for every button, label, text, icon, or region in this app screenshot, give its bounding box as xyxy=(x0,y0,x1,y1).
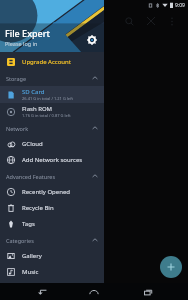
staticText: Advanced Features xyxy=(6,173,56,180)
staticText: Storage xyxy=(6,75,27,82)
button[interactable]: Search xyxy=(118,10,140,32)
button[interactable]: File Expert xyxy=(0,0,104,52)
staticText: GCloud xyxy=(22,140,43,148)
staticText: File Expert xyxy=(5,27,51,39)
button[interactable]: Home xyxy=(81,283,107,300)
staticText: Network xyxy=(6,125,29,132)
button[interactable]: Flash ROM xyxy=(0,103,104,120)
staticText: Upgrade Account xyxy=(22,58,71,66)
button[interactable]: Recents xyxy=(135,283,161,300)
staticText: 1.76 G in total / 0.87 G left xyxy=(22,113,71,118)
staticText: SD Card xyxy=(22,88,45,96)
staticText: 26.41 G in total / 1.21 G left xyxy=(22,96,73,101)
button[interactable]: SD Card xyxy=(0,86,104,103)
button[interactable]: Tags xyxy=(0,216,104,232)
button[interactable]: Recycle Bin xyxy=(0,200,104,216)
button[interactable]: Close xyxy=(140,10,162,32)
button[interactable]: Add xyxy=(160,256,182,278)
button[interactable]: Gallery xyxy=(0,248,104,264)
button[interactable]: Upgrade Account xyxy=(0,54,104,70)
button[interactable]: Add Network sources xyxy=(0,152,104,168)
staticText: Music xyxy=(22,268,39,276)
staticText: Tags xyxy=(22,220,35,228)
button[interactable]: Recently Opened xyxy=(0,184,104,200)
staticText: 9:09 xyxy=(175,2,185,9)
staticText: Categories xyxy=(6,237,34,244)
staticText: Recycle Bin xyxy=(22,204,54,212)
staticText: Recently Opened xyxy=(22,188,70,196)
staticText: Add Network sources xyxy=(22,156,83,164)
button[interactable]: Music xyxy=(0,264,104,280)
button[interactable]: GCloud xyxy=(0,136,104,152)
staticText: Flash ROM xyxy=(22,105,53,113)
button[interactable]: Settings xyxy=(85,33,99,47)
staticText: Gallery xyxy=(22,252,42,260)
button[interactable]: Back xyxy=(28,283,54,300)
staticText: Please log in xyxy=(5,40,38,47)
